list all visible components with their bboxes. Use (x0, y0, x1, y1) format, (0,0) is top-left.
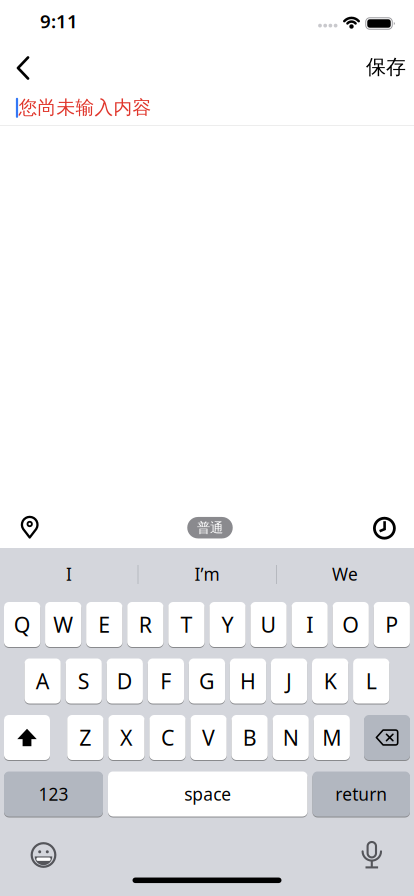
button[interactable]: return (312, 771, 410, 816)
button[interactable]: V (190, 715, 227, 760)
staticText: V (202, 723, 215, 752)
button[interactable]: N (273, 715, 309, 760)
staticText: 保存 (366, 55, 406, 79)
staticText: I (306, 610, 313, 639)
button[interactable]: D (107, 658, 143, 703)
button[interactable]: S (66, 658, 102, 703)
button[interactable]: We (280, 551, 410, 597)
button[interactable] (364, 715, 410, 760)
button[interactable]: E (86, 602, 122, 647)
staticText: I’m (194, 562, 219, 585)
button[interactable]: K (312, 658, 348, 703)
staticText: F (160, 667, 171, 695)
staticText: B (243, 723, 257, 752)
staticText: Z (79, 723, 91, 752)
button[interactable]: F (148, 658, 184, 703)
button[interactable]: P (374, 602, 410, 647)
staticText: D (117, 667, 133, 695)
staticText: N (283, 723, 299, 752)
button[interactable]: Q (4, 602, 40, 647)
staticText: 123 (38, 782, 68, 805)
button[interactable] (373, 517, 396, 540)
staticText: return (335, 782, 387, 805)
button[interactable]: T (168, 602, 205, 647)
staticText: T (180, 610, 192, 639)
staticText: J (286, 667, 292, 695)
button[interactable]: A (24, 658, 61, 703)
button[interactable] (4, 715, 50, 760)
staticText: L (366, 667, 377, 695)
staticText: 您尚未输入内容 (18, 96, 151, 119)
button[interactable]: O (333, 602, 369, 647)
button[interactable]: G (189, 658, 225, 703)
button[interactable]: W (45, 602, 81, 647)
staticText: R (139, 610, 152, 639)
button[interactable] (16, 55, 30, 80)
staticText: S (78, 667, 90, 695)
staticText: A (36, 667, 50, 695)
staticText: E (98, 610, 110, 639)
button[interactable]: I’m (142, 551, 272, 597)
staticText: W (53, 610, 73, 639)
staticText: P (385, 610, 398, 639)
button[interactable]: space (108, 771, 307, 816)
staticText: Q (14, 610, 31, 639)
button[interactable]: L (353, 658, 389, 703)
staticText: We (332, 562, 358, 585)
button[interactable]: B (231, 715, 268, 760)
button[interactable]: 123 (4, 771, 103, 816)
staticText: U (261, 610, 277, 639)
button[interactable]: X (108, 715, 145, 760)
button[interactable] (21, 516, 38, 539)
button[interactable]: J (271, 658, 307, 703)
button[interactable]: M (314, 715, 350, 760)
staticText: space (184, 782, 231, 805)
button[interactable]: I (4, 551, 134, 597)
staticText: X (120, 723, 133, 752)
button[interactable]: I (291, 602, 328, 647)
button[interactable]: H (230, 658, 266, 703)
button[interactable]: 普通 (187, 517, 233, 538)
button[interactable]: 保存 (366, 55, 406, 79)
staticText: C (161, 723, 174, 752)
staticText: 普通 (197, 519, 223, 536)
button[interactable]: Z (67, 715, 103, 760)
button[interactable]: Y (209, 602, 246, 647)
staticText: O (342, 610, 359, 639)
button[interactable] (30, 842, 56, 868)
staticText: K (324, 667, 337, 695)
button[interactable] (361, 840, 382, 868)
staticText: I (66, 562, 72, 585)
button[interactable]: U (250, 602, 287, 647)
button[interactable]: C (149, 715, 186, 760)
staticText: 9:11 (40, 9, 78, 33)
staticText: M (322, 723, 341, 752)
staticText: H (240, 667, 256, 695)
staticText: Y (221, 610, 233, 639)
button[interactable]: R (127, 602, 163, 647)
staticText: G (199, 667, 215, 695)
